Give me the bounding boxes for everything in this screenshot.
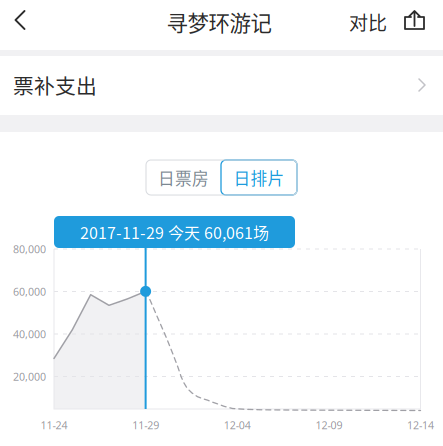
button[interactable]: 日排片 bbox=[221, 160, 297, 195]
button[interactable]: 对比 bbox=[344, 0, 392, 44]
button[interactable]: Back bbox=[0, 0, 42, 42]
staticText: 对比 bbox=[349, 8, 387, 36]
staticText: 80,000 bbox=[13, 242, 46, 256]
staticText: 11-29 bbox=[132, 418, 159, 432]
staticText: 2017-11-29 今天 60,061场 bbox=[80, 220, 269, 244]
staticText: 12-04 bbox=[224, 418, 251, 432]
staticText: 日排片 bbox=[233, 165, 284, 189]
staticText: 寻梦环游记 bbox=[166, 6, 271, 38]
staticText: 12-09 bbox=[315, 418, 342, 432]
staticText: 票补支出 bbox=[13, 70, 97, 100]
staticText: 40,000 bbox=[13, 327, 46, 341]
button[interactable]: Share bbox=[392, 0, 436, 42]
staticText: 11-24 bbox=[40, 418, 67, 432]
staticText: 60,000 bbox=[13, 284, 46, 299]
staticText: 12-14 bbox=[407, 418, 434, 432]
button[interactable]: 票补支出 bbox=[0, 56, 443, 114]
staticText: 20,000 bbox=[13, 369, 46, 384]
staticText: 日票房 bbox=[158, 165, 209, 189]
button[interactable]: 日票房 bbox=[146, 160, 221, 195]
